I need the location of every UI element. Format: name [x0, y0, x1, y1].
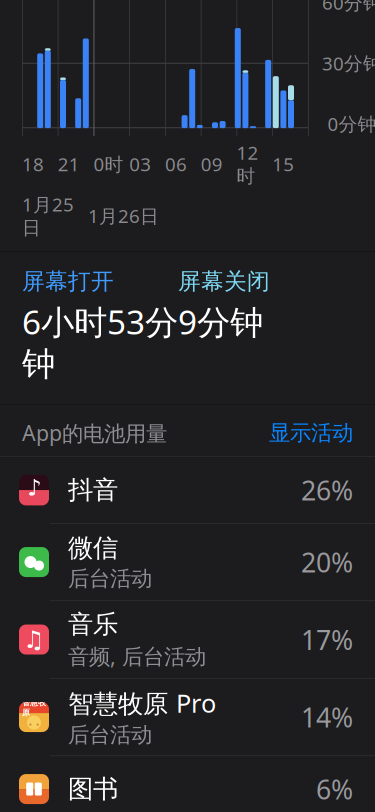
button[interactable]: 显示活动: [269, 420, 353, 446]
staticText: 屏幕打开: [22, 268, 114, 295]
staticText: 智慧牧原: [22, 698, 46, 717]
staticText: 15: [272, 152, 294, 176]
staticText: 微信: [68, 532, 118, 563]
staticText: 60分钟: [322, 0, 375, 15]
staticText: 图书: [68, 773, 118, 805]
button[interactable]: ♪: [0, 457, 375, 523]
staticText: 后台活动: [68, 722, 152, 748]
staticText: 30分钟: [322, 51, 375, 75]
staticText: 12时: [236, 140, 258, 188]
staticText: 屏幕关闭: [178, 268, 270, 295]
staticText: 显示活动: [269, 420, 353, 446]
staticText: 6小时53分钟: [22, 299, 178, 385]
staticText: 21: [58, 152, 80, 176]
staticText: 6%: [316, 771, 353, 807]
staticText: 1月25日: [22, 192, 74, 240]
staticText: 06: [165, 152, 187, 176]
staticText: 抖音: [68, 474, 118, 506]
staticText: 9分钟: [178, 299, 263, 344]
staticText: 智慧牧原 Pro: [68, 686, 216, 720]
button[interactable]: 图书: [0, 756, 375, 812]
staticText: 17%: [301, 622, 353, 657]
staticText: App的电池用量: [22, 419, 167, 447]
staticText: 1月26日: [88, 203, 159, 228]
button[interactable]: 智慧牧原: [0, 678, 375, 756]
staticText: 音频, 后台活动: [68, 642, 206, 670]
staticText: 音乐: [68, 609, 118, 640]
staticText: 0时: [93, 152, 123, 176]
button[interactable]: ♫: [0, 601, 375, 678]
button[interactable]: 微信: [0, 523, 375, 601]
staticText: 03: [129, 152, 151, 176]
staticText: 26%: [301, 472, 353, 508]
staticText: 后台活动: [68, 565, 152, 592]
staticText: 18: [22, 152, 44, 176]
staticText: ♫: [23, 626, 45, 653]
staticText: 14%: [301, 699, 353, 735]
staticText: 09: [201, 152, 223, 176]
staticText: 20%: [301, 544, 353, 580]
staticText: ♪: [27, 475, 41, 500]
staticText: 0分钟: [327, 111, 375, 136]
